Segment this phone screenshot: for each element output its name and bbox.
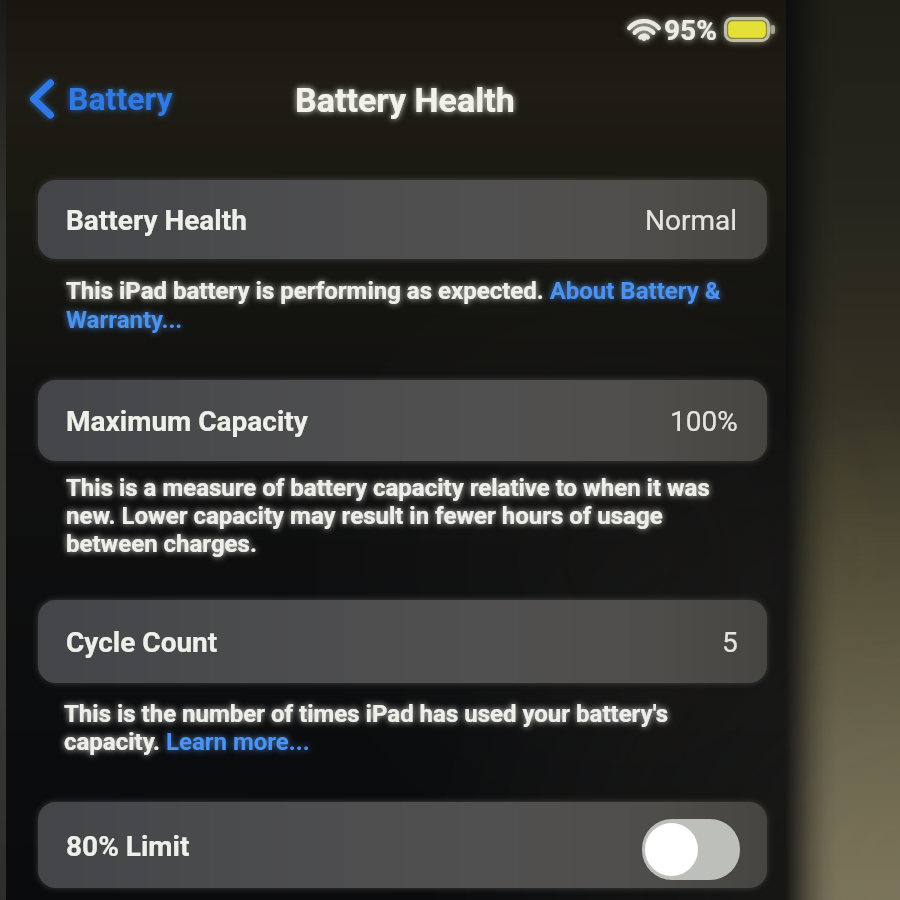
staticText: 80% Limit [66, 830, 190, 863]
staticText: Normal [645, 204, 738, 237]
staticText: Cycle Count [66, 626, 218, 659]
staticText: 80% Limit [66, 830, 190, 863]
button[interactable]: Battery Health [38, 180, 767, 259]
button[interactable]: Back [24, 74, 177, 124]
other: Back [28, 80, 56, 118]
staticText: 100% [670, 405, 738, 438]
staticText: 5 [722, 626, 738, 659]
button[interactable]: Battery Health [38, 180, 767, 259]
other: Battery 95 percent [724, 17, 776, 42]
staticText: Battery Health [295, 80, 515, 120]
other: Battery 95 percent [724, 17, 776, 42]
staticText: 95% [664, 14, 717, 47]
button[interactable]: Cycle Count [38, 600, 767, 683]
staticText: Maximum Capacity [66, 405, 308, 438]
staticText: 95% [664, 14, 717, 47]
button[interactable]: Maximum Capacity [38, 380, 767, 461]
button[interactable]: Back [24, 74, 177, 124]
staticText: This iPad battery is performing as expec… [66, 277, 730, 333]
other: Back [28, 80, 56, 118]
staticText: This iPad battery is performing as expec… [66, 277, 730, 333]
staticText: This is the number of times iPad has use… [64, 700, 689, 756]
staticText: Maximum Capacity [66, 405, 308, 438]
staticText: Battery [68, 80, 173, 118]
button[interactable]: Maximum Capacity [38, 380, 767, 461]
staticText: Battery Health [66, 204, 247, 237]
button[interactable]: 80% Limit [38, 802, 767, 888]
staticText: This is a measure of battery capacity re… [66, 474, 718, 558]
staticText: This is the number of times iPad has use… [64, 700, 689, 756]
staticText: Battery [68, 80, 173, 118]
staticText: 100% [670, 405, 738, 438]
button[interactable]: Cycle Count [38, 600, 767, 683]
staticText: Battery Health [295, 80, 515, 120]
staticText: Cycle Count [66, 626, 218, 659]
staticText: 5 [722, 626, 738, 659]
button[interactable]: 80% Limit [38, 802, 767, 888]
other: Wi-Fi [628, 17, 660, 41]
button[interactable]: 80% Limit toggle, off [642, 819, 740, 880]
staticText: Normal [645, 204, 738, 237]
button[interactable]: 80% Limit toggle, off [642, 819, 740, 880]
staticText: This is a measure of battery capacity re… [66, 474, 718, 558]
other: Wi-Fi [628, 17, 660, 41]
staticText: Battery Health [66, 204, 247, 237]
